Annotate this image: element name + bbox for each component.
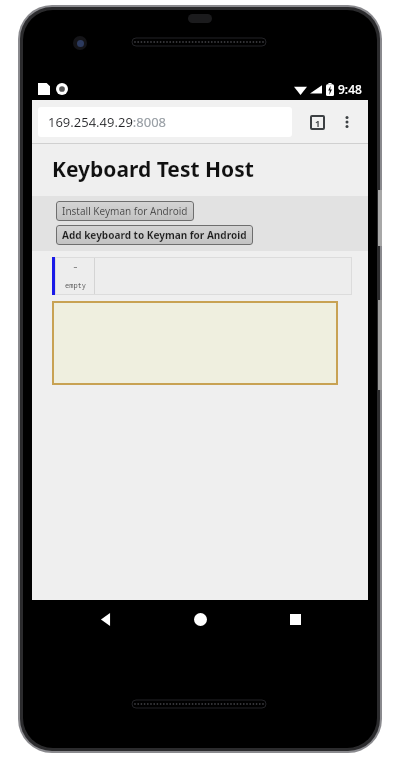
staticText: Keyboard Test Host [52,155,254,184]
button[interactable]: Back [83,600,127,638]
staticText: Install Keyman for Android [62,204,188,218]
staticText: 169.254.49.29:8008 [48,113,167,131]
button[interactable]: Add keyboard to Keyman for Android [56,225,253,245]
button[interactable]: Tabs [302,107,332,137]
staticText: 9:48 [338,81,362,97]
button[interactable] [52,301,338,385]
staticText: Add keyboard to Keyman for Android [62,228,247,242]
staticText: empty [65,281,86,291]
button[interactable]: More options [332,107,362,137]
button[interactable]: Recent apps [273,600,317,638]
staticText: 1 [315,117,321,129]
button[interactable]: Install Keyman for Android [56,201,194,221]
button[interactable]: 169.254.49.29:8008 [38,107,292,137]
button[interactable]: Home [178,600,222,638]
staticText: – [73,261,78,272]
